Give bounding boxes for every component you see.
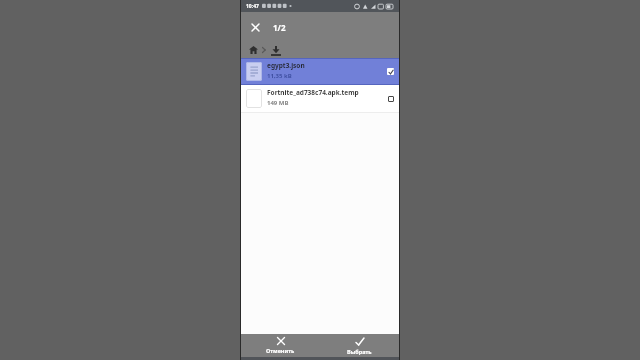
staticText: 149 MB xyxy=(267,99,289,107)
button[interactable] xyxy=(248,20,262,34)
staticText: Отменить xyxy=(266,347,295,354)
staticText: 11,35 kB xyxy=(267,72,292,80)
staticText: 1/2 xyxy=(273,22,286,33)
staticText: Fortnite_ad738c74.apk.temp xyxy=(267,88,359,97)
button[interactable]: Выбрать xyxy=(320,334,399,357)
staticText: 10:47 xyxy=(246,3,259,10)
button[interactable] xyxy=(387,68,394,75)
staticText: Выбрать xyxy=(347,348,372,355)
button[interactable] xyxy=(269,44,282,57)
button[interactable] xyxy=(247,44,259,56)
button[interactable]: Fortnite_ad738c74.apk.temp xyxy=(241,85,399,112)
staticText: egypt3.json xyxy=(267,61,305,70)
button[interactable]: egypt3.json xyxy=(241,59,399,84)
button[interactable] xyxy=(388,96,394,102)
button[interactable]: Отменить xyxy=(241,334,320,357)
